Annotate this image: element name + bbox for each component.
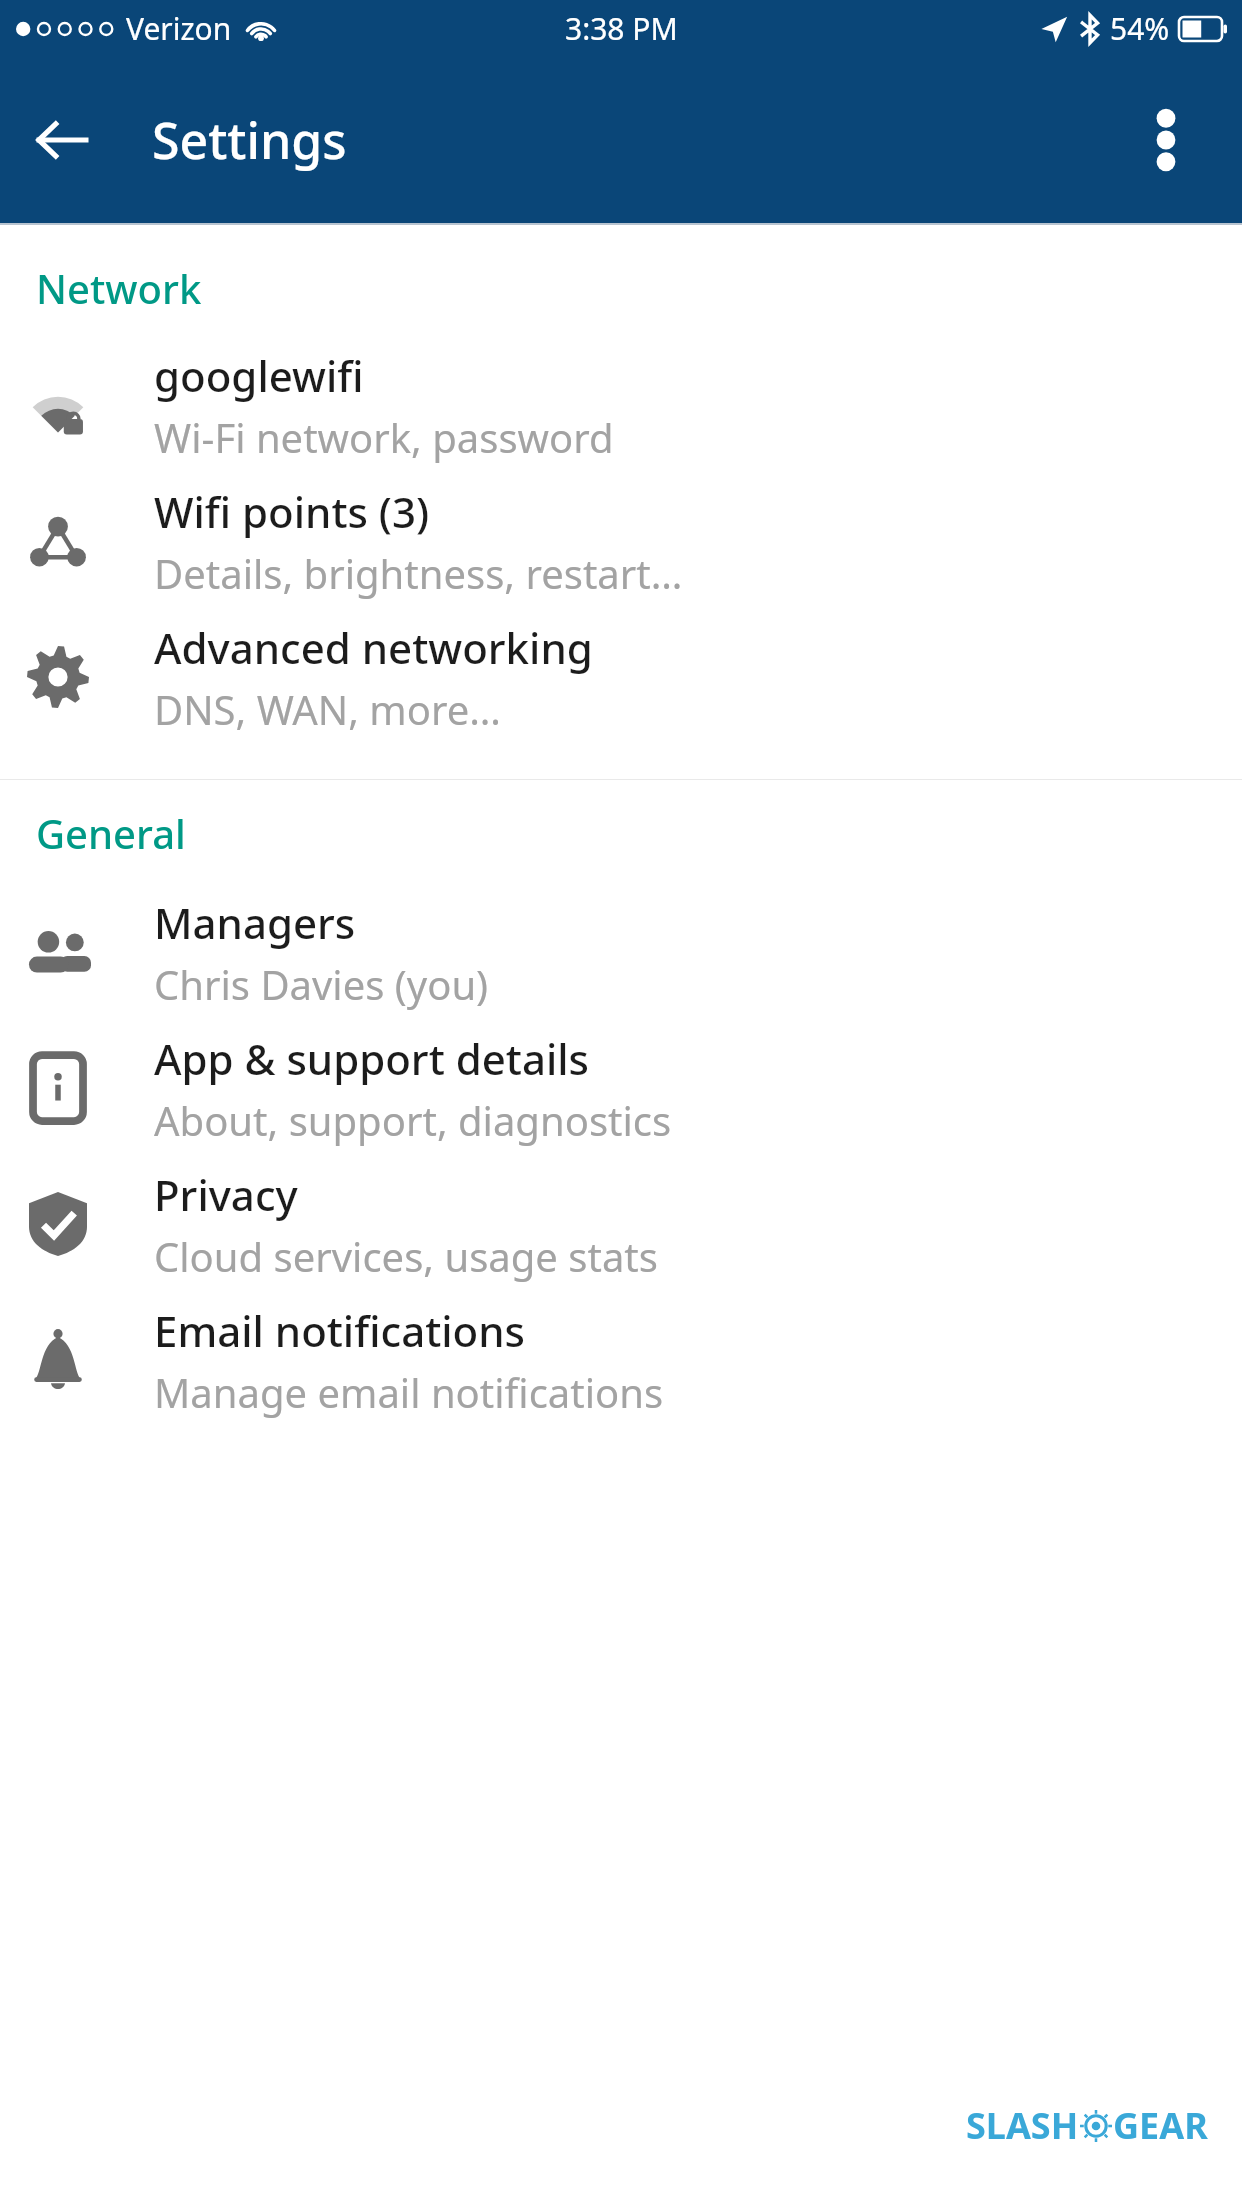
button[interactable]: Wifi points (3) [0,473,1242,609]
staticText: Wifi points (3) [154,483,430,540]
staticText: Managers [154,894,356,951]
staticText: Network [36,261,202,315]
staticText: App & support details [154,1030,589,1087]
button[interactable]: Privacy [0,1156,1242,1292]
button[interactable]: Email notifications [0,1292,1242,1428]
staticText: Details, brightness, restart… [154,546,683,600]
staticText: DNS, WAN, more… [154,682,501,736]
staticText: SLASH [966,2101,1079,2150]
button[interactable]: More options [1118,92,1214,188]
staticText: Cloud services, usage stats [154,1229,658,1283]
staticText: General [36,806,186,860]
staticText: GEAR [1113,2101,1208,2150]
staticText: Settings [152,106,347,174]
button[interactable]: App & support details [0,1020,1242,1156]
staticText: Wi-Fi network, password [154,410,614,464]
button[interactable]: Advanced networking [0,609,1242,745]
staticText: 3:38 PM [565,8,678,49]
button[interactable]: Managers [0,884,1242,1020]
staticText: 54% [1110,8,1170,49]
staticText: Email notifications [154,1302,525,1359]
staticText: About, support, diagnostics [154,1093,672,1147]
staticText: Chris Davies (you) [154,957,489,1011]
staticText: googlewifi [154,347,364,404]
staticText: Privacy [154,1166,298,1223]
staticText: Manage email notifications [154,1365,664,1419]
staticText: Verizon [126,8,232,49]
button[interactable]: Back [14,92,110,188]
staticText: Advanced networking [154,619,593,676]
button[interactable]: googlewifi [0,337,1242,473]
